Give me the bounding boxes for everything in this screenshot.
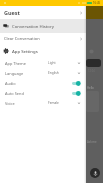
- button[interactable]: Guest: [0, 6, 86, 19]
- button[interactable]: Clear Conversation: [0, 33, 86, 44]
- staticText: 12:04: [88, 69, 95, 73]
- staticText: Audio: [5, 81, 16, 86]
- staticText: Light: [48, 61, 56, 65]
- staticText: App Settings: [12, 48, 38, 54]
- button[interactable]: Language: [0, 68, 86, 78]
- staticText: Guest: [4, 9, 20, 16]
- staticText: Clear Conversation: [4, 36, 40, 41]
- button[interactable]: Microphone: [90, 168, 100, 178]
- staticText: Female: [48, 101, 59, 105]
- staticText: Voice: [5, 101, 15, 106]
- staticText: Conversation History: [12, 23, 54, 29]
- button[interactable]: Voice: [0, 98, 86, 108]
- staticText: Ask me: [87, 140, 97, 144]
- staticText: English: [48, 71, 59, 75]
- button[interactable]: Auto Send: [0, 88, 86, 98]
- button[interactable]: Audio: [0, 78, 86, 88]
- staticText: Language: [5, 71, 24, 76]
- staticText: App Theme: [5, 61, 26, 66]
- button[interactable]: Conversation History: [0, 19, 86, 33]
- button[interactable]: App Theme: [0, 58, 86, 68]
- staticText: Hello: [87, 86, 94, 90]
- staticText: 16:45: [93, 1, 101, 5]
- staticText: Auto Send: [5, 91, 24, 96]
- button[interactable]: App Settings: [0, 44, 86, 58]
